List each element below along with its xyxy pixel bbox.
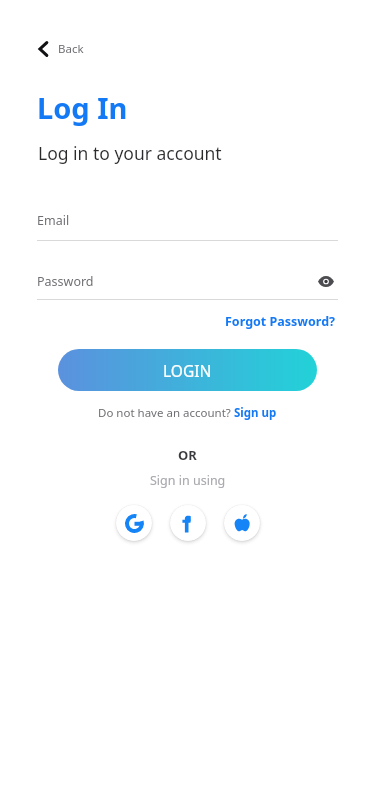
button[interactable]: Email [37,212,338,241]
staticText: Sign up [234,405,277,421]
staticText: Do not have an account? [98,405,234,421]
staticText: Sign in using [150,472,226,489]
button[interactable]: Forgot Password? [223,311,338,332]
button[interactable]: Sign in with Apple [224,505,260,541]
staticText: Email [37,212,70,229]
staticText: Log In [37,88,128,127]
staticText: Password [37,273,94,290]
button[interactable]: Password [37,273,314,290]
staticText: OR [178,446,197,464]
button[interactable]: Back [34,38,88,60]
button[interactable]: Sign in with Google [116,505,152,541]
staticText: Forgot Password? [225,313,336,330]
button[interactable]: Sign in with Facebook [170,505,206,541]
staticText: Log in to your account [38,141,222,165]
staticText: Back [58,41,84,57]
button[interactable]: LOGIN [58,349,317,391]
button[interactable]: Sign up [234,405,277,421]
staticText: LOGIN [163,360,212,381]
button[interactable]: Show password [314,269,338,293]
